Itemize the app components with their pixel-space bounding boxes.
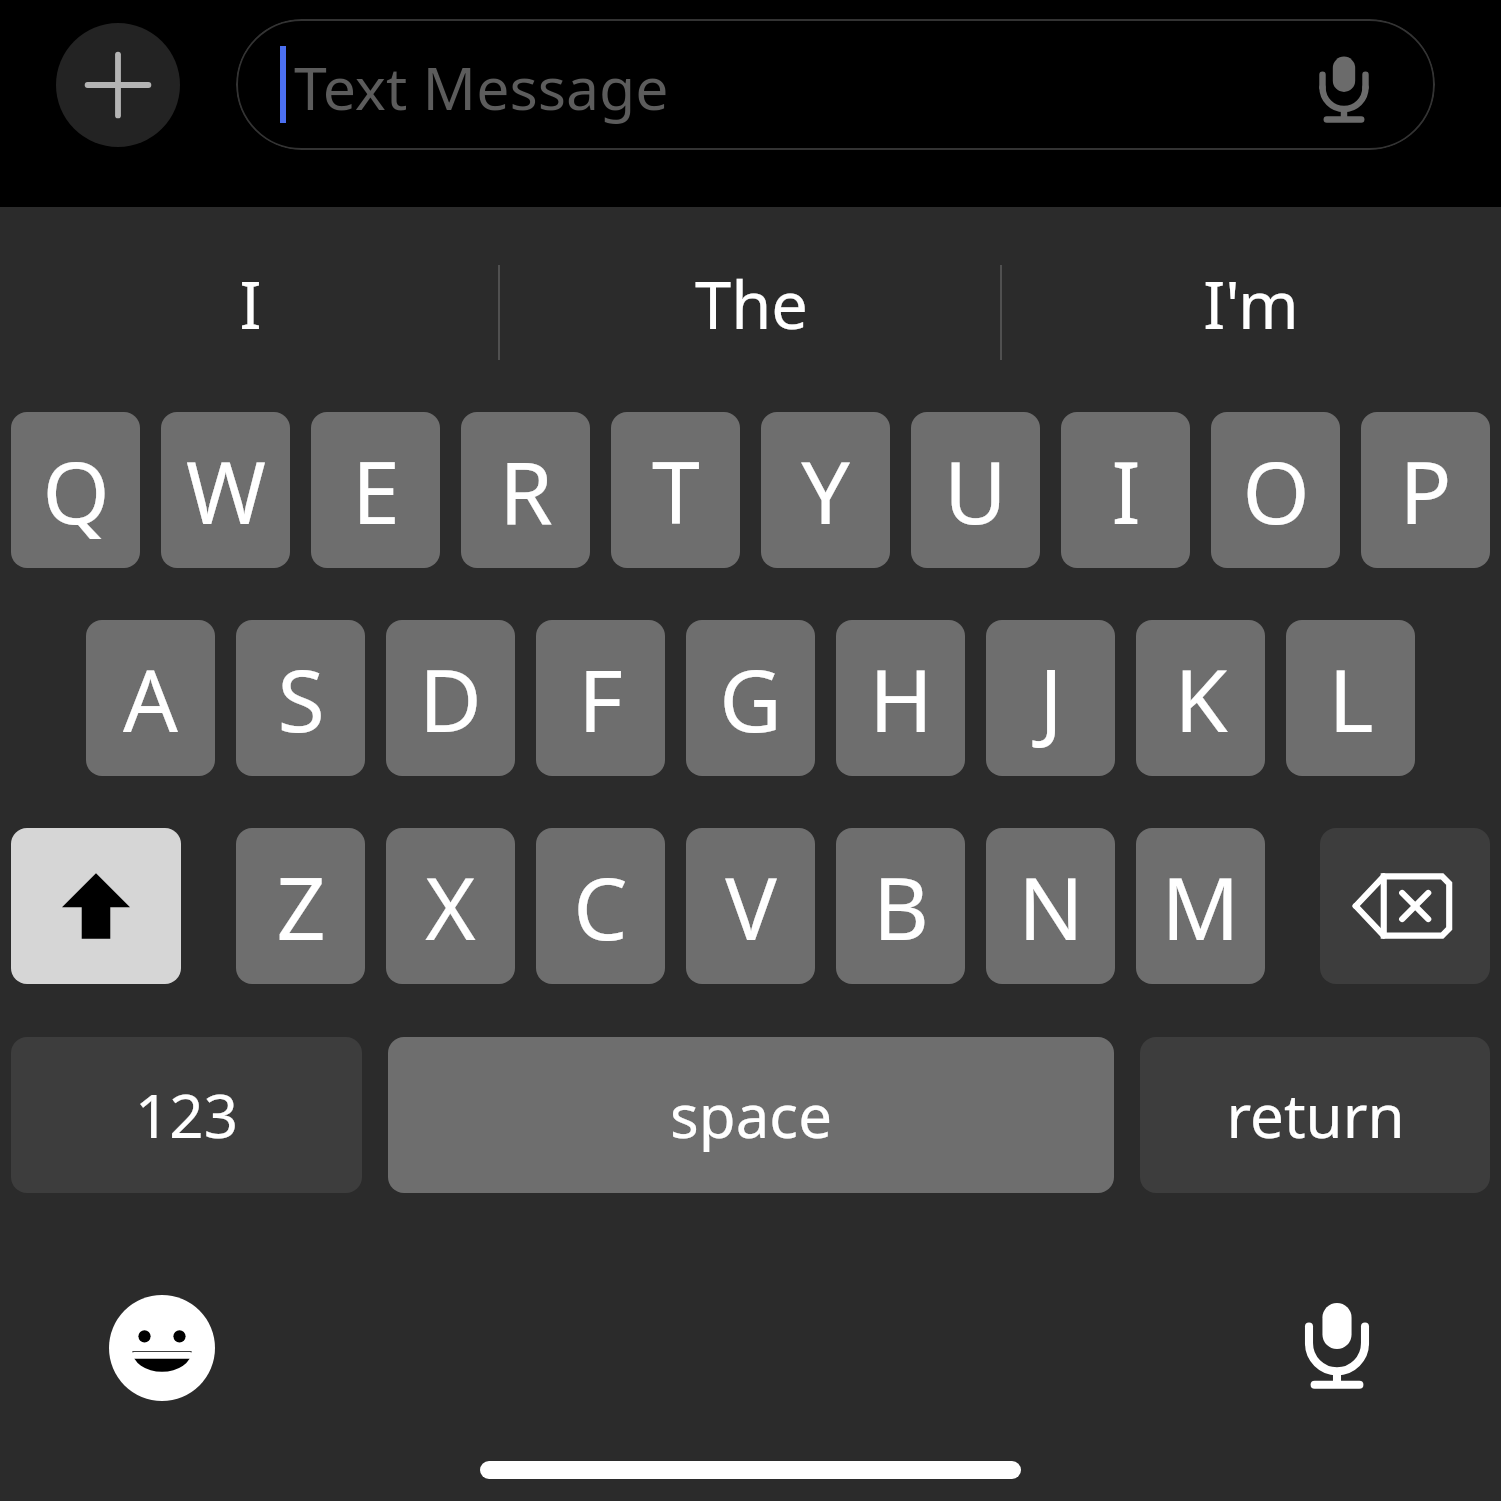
button[interactable]: D <box>386 620 515 776</box>
staticText: T <box>652 432 700 549</box>
staticText: space <box>670 1074 832 1156</box>
button[interactable]: V <box>686 828 815 984</box>
button[interactable]: G <box>686 620 815 776</box>
button[interactable]: J <box>986 620 1115 776</box>
staticText: L <box>1328 640 1374 757</box>
button[interactable]: A <box>86 620 215 776</box>
button[interactable]: Emoji keyboard <box>100 1286 224 1410</box>
button[interactable]: 123 <box>11 1037 362 1193</box>
staticText: E <box>352 432 400 549</box>
staticText: R <box>499 432 553 549</box>
button[interactable]: H <box>836 620 965 776</box>
staticText: Z <box>276 848 326 965</box>
staticText: P <box>1399 432 1452 549</box>
staticText: F <box>578 640 623 757</box>
button[interactable]: C <box>536 828 665 984</box>
staticText: C <box>573 848 628 965</box>
staticText: The <box>695 260 808 349</box>
button[interactable]: R <box>461 412 590 568</box>
staticText: U <box>944 432 1007 549</box>
button[interactable]: P <box>1361 412 1490 568</box>
button[interactable]: W <box>161 412 290 568</box>
button[interactable]: M <box>1136 828 1265 984</box>
button[interactable]: L <box>1286 620 1415 776</box>
button[interactable]: N <box>986 828 1115 984</box>
button[interactable]: Shift <box>11 828 181 984</box>
button[interactable]: Delete <box>1320 828 1490 984</box>
staticText: return <box>1226 1074 1405 1156</box>
staticText: K <box>1174 640 1228 757</box>
staticText: Y <box>801 432 850 549</box>
button[interactable]: Z <box>236 828 365 984</box>
staticText: V <box>725 848 777 965</box>
button[interactable]: O <box>1211 412 1340 568</box>
staticText: Text Message <box>294 47 669 127</box>
button[interactable]: The <box>501 207 1001 402</box>
staticText: S <box>277 640 325 757</box>
button[interactable]: Dictate <box>1301 42 1387 128</box>
button[interactable]: U <box>911 412 1040 568</box>
button[interactable]: I'm <box>1001 207 1501 402</box>
staticText: W <box>186 432 266 549</box>
button[interactable]: F <box>536 620 665 776</box>
staticText: A <box>123 640 178 757</box>
staticText: G <box>719 640 782 757</box>
staticText: Q <box>42 432 110 549</box>
staticText: O <box>1242 432 1310 549</box>
staticText: B <box>873 848 929 965</box>
staticText: M <box>1161 848 1240 965</box>
button[interactable]: S <box>236 620 365 776</box>
staticText: H <box>869 640 933 757</box>
staticText: I'm <box>1203 260 1299 349</box>
staticText: J <box>1039 640 1063 757</box>
button[interactable]: Add attachment <box>56 23 180 147</box>
button[interactable]: K <box>1136 620 1265 776</box>
staticText: D <box>419 640 482 757</box>
button[interactable]: Q <box>11 412 140 568</box>
button[interactable]: Y <box>761 412 890 568</box>
button[interactable]: E <box>311 412 440 568</box>
button[interactable]: Text Message <box>236 19 1435 150</box>
button[interactable]: T <box>611 412 740 568</box>
staticText: 123 <box>135 1074 238 1156</box>
staticText: I <box>239 260 262 349</box>
button[interactable]: I <box>0 207 501 402</box>
staticText: I <box>1111 432 1141 549</box>
button[interactable]: B <box>836 828 965 984</box>
button[interactable]: I <box>1061 412 1190 568</box>
button[interactable]: X <box>386 828 515 984</box>
staticText: X <box>425 848 476 965</box>
button[interactable]: return <box>1140 1037 1490 1193</box>
button[interactable]: space <box>388 1037 1114 1193</box>
staticText: N <box>1018 848 1084 965</box>
button[interactable]: Dictation <box>1275 1278 1399 1402</box>
